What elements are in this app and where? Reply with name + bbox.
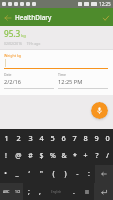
staticText: 0	[105, 133, 110, 143]
staticText: _	[15, 169, 19, 179]
staticText: 2/2/16	[4, 78, 21, 86]
staticText: (	[52, 169, 55, 179]
button[interactable]: 6	[58, 129, 69, 147]
button[interactable]: 1/2	[12, 183, 23, 200]
button[interactable]: 2	[12, 129, 24, 147]
staticText: HealthDiary	[15, 13, 52, 22]
staticText: +	[83, 151, 88, 161]
button[interactable]: 0	[102, 129, 113, 147]
staticText: ‘	[28, 169, 30, 179]
staticText: 4	[39, 133, 44, 143]
staticText: )	[64, 169, 67, 179]
button[interactable]: Emoji	[79, 183, 94, 200]
staticText: 3	[28, 133, 33, 143]
button[interactable]: $	[36, 147, 47, 165]
button[interactable]: 8	[80, 129, 91, 147]
button[interactable]: ;	[23, 183, 34, 200]
staticText: 02/02/2016 19 h ago	[4, 41, 41, 46]
button[interactable]: +	[80, 147, 91, 165]
staticText: 7	[72, 133, 77, 143]
button[interactable]: Save	[99, 11, 112, 24]
button[interactable]: 4	[36, 129, 47, 147]
button[interactable]: 1	[0, 129, 12, 147]
button[interactable]: 9	[91, 129, 102, 147]
button[interactable]: !	[0, 147, 12, 165]
button[interactable]: 7	[69, 129, 80, 147]
staticText: 12:25 PM	[58, 78, 83, 86]
staticText: 1	[4, 133, 9, 143]
staticText: ABC	[3, 189, 10, 194]
staticText: 6	[61, 133, 66, 143]
staticText: "	[40, 169, 43, 179]
staticText: kg	[21, 33, 26, 39]
staticText: •	[4, 169, 7, 179]
staticText: 95.3	[4, 28, 21, 39]
staticText: 12:25	[99, 1, 111, 7]
staticText: :	[88, 169, 90, 179]
button[interactable]: 3	[24, 129, 36, 147]
button[interactable]: -	[71, 165, 83, 183]
button[interactable]: %	[47, 147, 58, 165]
staticText: ?	[95, 151, 99, 161]
staticText: Time	[58, 72, 66, 77]
staticText: /	[106, 151, 109, 161]
button[interactable]: ‘	[23, 165, 35, 183]
button[interactable]: "	[35, 165, 47, 183]
button[interactable]: (	[47, 165, 59, 183]
staticText: .	[73, 187, 75, 197]
button[interactable]: *	[69, 147, 80, 165]
button[interactable]: Enter	[94, 183, 113, 200]
staticText: 9	[94, 133, 99, 143]
staticText: -	[76, 169, 79, 179]
button[interactable]: ?	[91, 147, 102, 165]
staticText: Date	[4, 72, 12, 77]
staticText: 8	[83, 133, 88, 143]
button[interactable]: Add entry	[91, 102, 108, 119]
button[interactable]: Date	[4, 72, 54, 89]
button[interactable]: ABC	[0, 183, 12, 200]
button[interactable]: Space	[45, 183, 68, 200]
staticText: %	[50, 151, 56, 161]
button[interactable]: )	[59, 165, 71, 183]
button[interactable]: Time	[58, 72, 108, 89]
button[interactable]: _	[11, 165, 23, 183]
staticText: ;	[28, 187, 30, 197]
button[interactable]: #	[24, 147, 36, 165]
button[interactable]: .	[68, 183, 79, 200]
staticText: #	[28, 151, 33, 161]
button[interactable]: Backspace	[95, 165, 113, 183]
button[interactable]: 5	[47, 129, 58, 147]
staticText: English	[51, 190, 62, 194]
button[interactable]: ,	[34, 183, 45, 200]
staticText: ,	[39, 187, 41, 197]
staticText: 5	[50, 133, 55, 143]
staticText: $	[39, 151, 44, 161]
button[interactable]: :	[83, 165, 95, 183]
staticText: 1/2	[15, 189, 21, 194]
button[interactable]: •	[0, 165, 11, 183]
staticText: Weight kg	[4, 53, 22, 58]
button[interactable]: &	[58, 147, 69, 165]
staticText: 2	[16, 133, 21, 143]
staticText: @	[15, 151, 22, 161]
staticText: &	[61, 151, 67, 161]
button[interactable]: @	[12, 147, 24, 165]
button[interactable]: /	[102, 147, 113, 165]
staticText: !	[5, 151, 7, 161]
staticText: *	[73, 151, 77, 161]
button[interactable]: Navigate up	[1, 11, 14, 24]
